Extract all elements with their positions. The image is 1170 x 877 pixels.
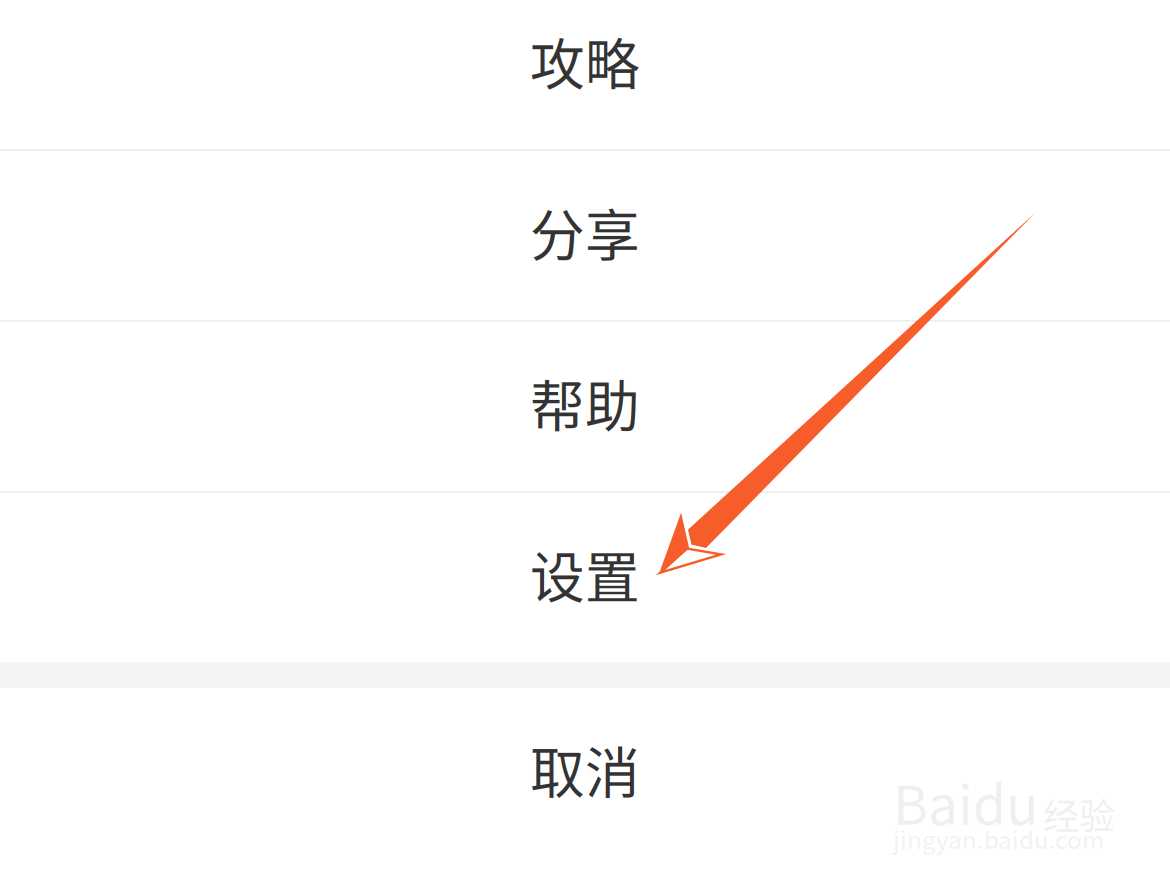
staticText: 经验 [1043, 788, 1115, 840]
staticText: Baidu [893, 763, 1038, 840]
staticText: 取消 [530, 729, 640, 809]
staticText: 帮助 [530, 363, 640, 442]
staticText: 攻略 [530, 21, 640, 100]
button[interactable]: 取消 [0, 688, 1170, 858]
button[interactable]: 设置 [0, 493, 1170, 662]
button[interactable]: 帮助 [0, 322, 1170, 491]
button[interactable]: 攻略 [0, 0, 1170, 149]
staticText: 分享 [530, 192, 640, 271]
staticText: 设置 [530, 534, 640, 613]
staticText: jingyan.baidu.com [893, 821, 1104, 856]
button[interactable]: 分享 [0, 151, 1170, 320]
